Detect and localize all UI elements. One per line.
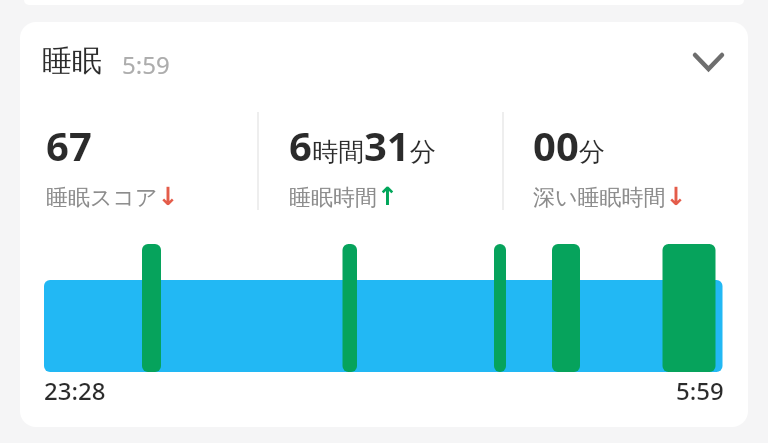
staticText: 67 [46,118,92,172]
staticText: 5:59 [676,374,724,407]
button[interactable]: 6時間31分 [289,118,436,212]
staticText: 睡眠時間↑ [289,182,398,212]
staticText: 23:28 [44,374,106,407]
staticText: 睡眠 [42,42,102,80]
button[interactable]: 67 [46,118,179,212]
staticText: 6時間31分 [289,118,436,172]
staticText: 睡眠スコア↓ [46,182,179,212]
staticText: 00分 [533,118,605,172]
button[interactable] [684,42,732,82]
staticText: 深い睡眠時間↓ [533,182,687,212]
button[interactable]: 00分 [533,118,687,212]
staticText: 5:59 [122,48,170,81]
button[interactable] [20,22,748,427]
